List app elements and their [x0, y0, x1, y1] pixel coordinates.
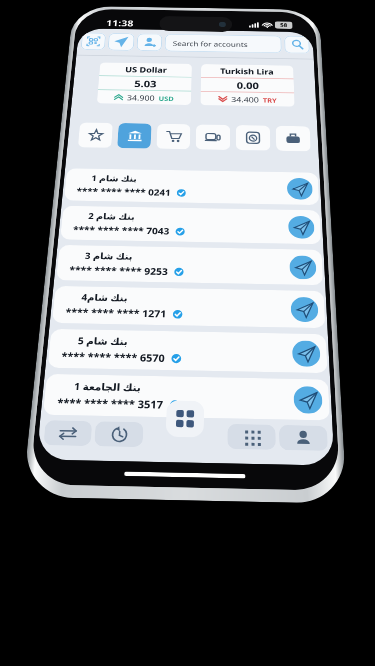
staticText: TRY [263, 96, 277, 104]
staticText: 5.03 [134, 77, 157, 89]
button[interactable]: Send to بنك شام4 [290, 297, 319, 322]
button[interactable]: Keypad [227, 424, 276, 450]
button[interactable]: Search for accounts [164, 34, 282, 53]
button[interactable]: Search [284, 36, 310, 54]
button[interactable]: Profile [279, 425, 328, 451]
button[interactable]: Apps menu [165, 400, 204, 437]
button[interactable]: Appliances [236, 125, 270, 151]
button[interactable]: Transfer [43, 420, 92, 446]
button[interactable]: Scan QR [80, 32, 106, 50]
staticText: بنك الجامعة 1 [74, 379, 141, 394]
button[interactable]: بنك شام 5 [47, 329, 328, 373]
staticText: 34.400 [231, 94, 259, 105]
button[interactable]: US Dollar [97, 62, 192, 105]
button[interactable]: Electronics [196, 124, 230, 150]
staticText: بنك شام 2 [88, 210, 135, 222]
button[interactable]: Send to بنك شام 5 [292, 340, 321, 367]
button[interactable]: Send to بنك شام 2 [288, 216, 315, 239]
staticText: USD [158, 94, 174, 102]
button[interactable]: Add contact [136, 33, 162, 51]
staticText: US Dollar [125, 64, 167, 75]
button[interactable]: Send to بنك شام 1 [287, 178, 313, 200]
button[interactable]: بنك شام 3 [56, 245, 323, 285]
staticText: بنك شام4 [81, 291, 129, 304]
button[interactable]: Work [276, 126, 311, 151]
button[interactable]: Banks [117, 123, 152, 149]
staticText: Search for accounts [173, 39, 248, 48]
button[interactable]: Send to بنك شام 3 [289, 255, 317, 280]
staticText: **** **** **** 7043 [73, 223, 170, 237]
button[interactable]: بنك الجامعة 1 [43, 374, 330, 420]
button[interactable]: Send money [107, 33, 135, 51]
staticText: Turkish Lira [220, 66, 274, 77]
button[interactable]: Send to بنك الجامعة 1 [293, 386, 323, 414]
button[interactable]: Turkish Lira [200, 64, 295, 107]
staticText: 0.00 [237, 79, 259, 91]
button[interactable]: بنك شام4 [52, 286, 325, 328]
button[interactable]: بنك شام 1 [64, 168, 319, 205]
button[interactable]: History [94, 421, 144, 447]
button[interactable]: Shopping [156, 124, 190, 149]
staticText: بنك شام 1 [91, 173, 138, 184]
staticText: **** **** **** 9253 [69, 263, 168, 278]
button[interactable]: بنك شام 2 [60, 206, 321, 244]
staticText: **** **** **** 0241 [76, 185, 171, 198]
staticText: 58 [280, 22, 288, 29]
staticText: **** **** **** 6570 [61, 349, 165, 365]
staticText: بنك شام 3 [84, 250, 133, 262]
staticText: **** **** **** 1271 [65, 305, 167, 320]
staticText: 11:38 [106, 17, 134, 28]
button[interactable]: Favorites [78, 122, 113, 148]
staticText: بنك شام 5 [77, 334, 128, 348]
staticText: 34.900 [127, 93, 155, 103]
staticText: **** **** **** 3517 [57, 395, 164, 412]
